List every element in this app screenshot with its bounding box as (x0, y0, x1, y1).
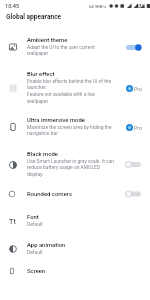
button[interactable]: Pro feature (126, 85, 142, 92)
button[interactable]: Toggle on (125, 43, 142, 52)
button[interactable]: Tt (0, 206, 150, 234)
staticText: Ultra immersive mode (27, 117, 85, 124)
button[interactable]: Pro feature (126, 124, 142, 131)
staticText: Default (27, 221, 43, 227)
staticText: Rounded corners (27, 191, 72, 198)
staticText: Enable blur effects behind the UI of the… (27, 78, 115, 105)
staticText: 63% (136, 3, 146, 9)
staticText: Default (27, 249, 43, 255)
staticText: 64.9KB/s (89, 4, 107, 9)
staticText: Blur effect (27, 71, 55, 78)
staticText: App animation (27, 242, 66, 249)
button[interactable]: Blur effect (0, 64, 150, 111)
button[interactable]: App animation (0, 234, 150, 261)
staticText: Global appearance (6, 13, 62, 21)
button[interactable]: Rounded corners (0, 184, 150, 206)
staticText: Pro (134, 125, 142, 131)
button[interactable]: Ultra immersive mode (0, 111, 150, 144)
staticText: Adapt the UI to the user current wallpap… (27, 44, 115, 57)
button[interactable]: Screen (0, 261, 150, 281)
staticText: Screen (27, 268, 46, 275)
button[interactable]: Ambient theme (0, 30, 150, 64)
staticText: Maximize the screen area by hiding the n… (27, 124, 115, 137)
staticText: Tt (9, 217, 16, 225)
staticText: Use Smart Launcher in gray scale. It can… (27, 158, 115, 178)
button[interactable]: Black mode (0, 144, 150, 184)
staticText: Black mode (27, 151, 58, 158)
staticText: Ambient theme (27, 37, 68, 44)
button[interactable]: Toggle off (125, 191, 142, 197)
staticText: Pro (134, 86, 142, 92)
staticText: Font (27, 214, 39, 221)
button[interactable]: Toggle off (125, 160, 142, 169)
staticText: 10:45 (5, 3, 20, 10)
